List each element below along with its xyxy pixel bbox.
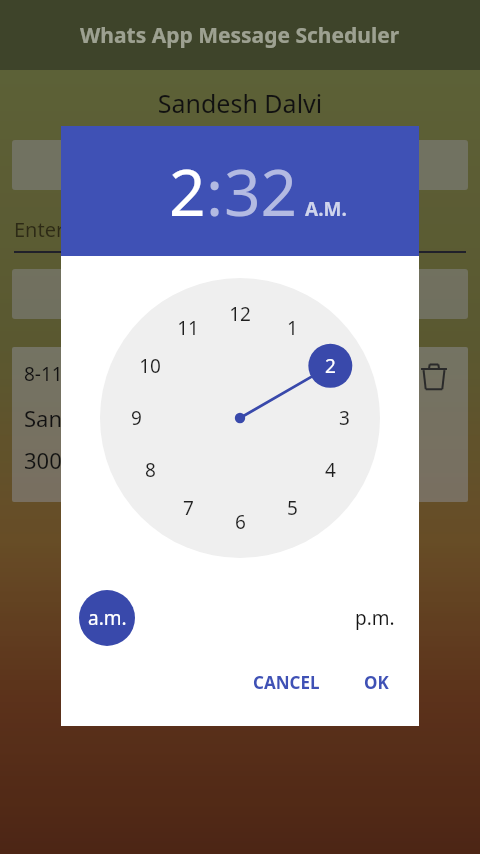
staticText: 32 xyxy=(224,148,298,235)
staticText: 1 xyxy=(287,315,298,341)
staticText: 8 xyxy=(145,457,156,483)
button[interactable]: a.m. xyxy=(79,590,135,646)
button[interactable]: p.m. xyxy=(355,605,395,631)
staticText: A.M. xyxy=(305,196,347,222)
staticText: a.m. xyxy=(88,605,127,631)
button[interactable]: CANCEL xyxy=(243,663,330,702)
button[interactable]: 7 xyxy=(170,490,206,526)
button[interactable]: 4 xyxy=(312,452,348,488)
staticText: 3000 xyxy=(24,445,75,475)
staticText: 7 xyxy=(183,495,194,521)
button[interactable]: 5 xyxy=(274,490,310,526)
staticText: OK xyxy=(364,671,389,694)
staticText: : xyxy=(206,148,224,235)
staticText: Sandesh Dalvi xyxy=(0,86,480,120)
button[interactable]: OK xyxy=(354,663,399,702)
button[interactable]: 1 xyxy=(274,310,310,346)
staticText: 5 xyxy=(287,495,298,521)
staticText: Whats App Message Scheduler xyxy=(80,21,400,50)
staticText: 6 xyxy=(235,509,246,535)
staticText: Enter Message xyxy=(14,216,153,243)
staticText: 8-11-2019 xyxy=(24,361,113,387)
button[interactable]: 12 xyxy=(222,296,258,332)
staticText: 10 xyxy=(139,353,161,379)
button[interactable]: 8-11-2019 xyxy=(12,347,468,502)
button[interactable]: 2 xyxy=(312,348,348,384)
button[interactable]: 6 xyxy=(222,504,258,540)
staticText: p.m. xyxy=(355,605,395,631)
staticText: 9 xyxy=(131,405,142,431)
button[interactable]: 3 xyxy=(326,400,362,436)
button[interactable]: 2 xyxy=(169,148,206,235)
button[interactable]: 8 xyxy=(132,452,168,488)
button[interactable]: A.M. xyxy=(305,196,347,222)
button[interactable] xyxy=(12,140,468,190)
staticText: CANCEL xyxy=(253,671,320,694)
staticText: 2 xyxy=(325,353,336,379)
staticText: 2 xyxy=(169,148,206,235)
button[interactable]: 10 xyxy=(132,348,168,384)
button[interactable]: 9 xyxy=(118,400,154,436)
button[interactable] xyxy=(12,269,468,319)
staticText: Sandesh Dalvi Second xyxy=(24,403,250,433)
staticText: 12 xyxy=(229,301,251,327)
staticText: 4 xyxy=(325,457,336,483)
button[interactable]: 11 xyxy=(170,310,206,346)
staticText: 11 xyxy=(177,315,199,341)
staticText: 3 xyxy=(339,405,350,431)
button[interactable]: Delete xyxy=(416,359,452,395)
button[interactable]: 32 xyxy=(224,148,298,235)
